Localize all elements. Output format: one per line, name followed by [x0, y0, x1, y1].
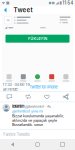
staticText: 17:33 · 04 Eki 19 tarihinde ·	[2, 82, 29, 92]
staticText: Yanıtını Tweetle	[2, 132, 29, 137]
staticText: 11:54	[62, 0, 73, 5]
button[interactable]: Back	[2, 5, 11, 14]
button[interactable]: Home	[25, 142, 50, 147]
button[interactable]: Recent apps	[50, 142, 75, 146]
staticText: @mhmtksrl yine mi	[12, 109, 43, 113]
button[interactable]: Reply	[0, 94, 19, 100]
button[interactable]: Retweet	[19, 94, 38, 100]
button[interactable]: Like	[37, 94, 56, 100]
staticText: Tweet	[13, 6, 32, 14]
button[interactable]: YÜKLEYİN	[5, 35, 69, 43]
staticText: Bizzat kurulumunda yaşanabilir, aklınızd…	[12, 114, 64, 127]
button[interactable]: Back	[0, 142, 25, 147]
staticText: Twitter for iPhone	[29, 85, 57, 89]
staticText: YÜKLEYİN	[27, 36, 47, 41]
staticText: @ibrahimkrl · 4s	[25, 104, 51, 109]
button[interactable]: Share	[56, 94, 75, 100]
staticText: İbrahim	[12, 104, 24, 109]
button[interactable]: Twitter for iPhone	[29, 85, 57, 89]
